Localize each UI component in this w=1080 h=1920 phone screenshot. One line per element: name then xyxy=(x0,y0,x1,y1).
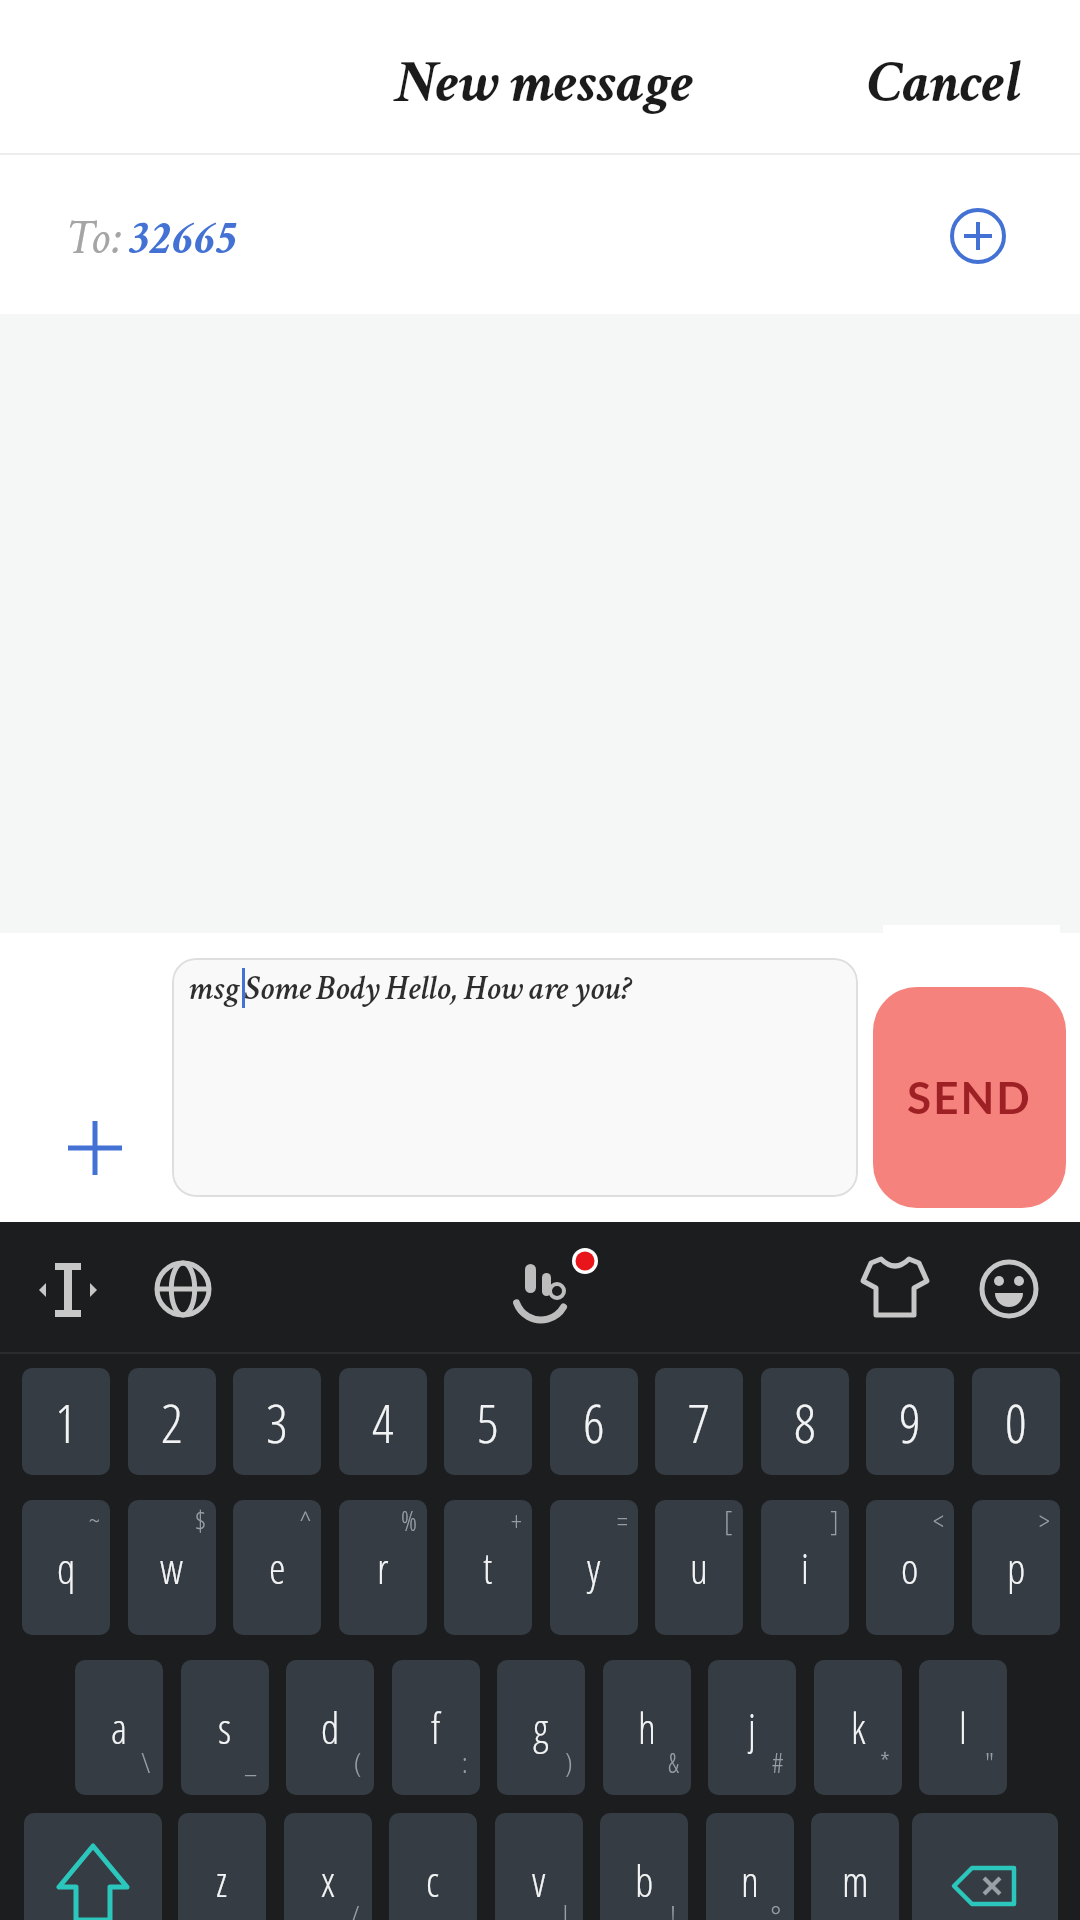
button[interactable]: 5 xyxy=(444,1368,532,1475)
staticText: z xyxy=(216,1852,228,1909)
staticText: 5 xyxy=(477,1385,499,1459)
staticText: k xyxy=(851,1699,866,1756)
staticText: 9 xyxy=(899,1385,921,1459)
staticText: ^ xyxy=(300,1502,311,1539)
staticText: 4 xyxy=(372,1385,394,1459)
button[interactable]: 7 xyxy=(655,1368,743,1475)
button[interactable]: msg Some Body Hello, How are you? xyxy=(172,958,858,1197)
staticText: v xyxy=(532,1852,546,1909)
button[interactable]: p xyxy=(972,1500,1060,1635)
staticText: " xyxy=(985,1744,995,1781)
button[interactable]: Cancel xyxy=(868,44,1022,122)
staticText: | xyxy=(560,1897,571,1920)
staticText: y xyxy=(587,1539,601,1596)
button[interactable]: u xyxy=(655,1500,743,1635)
staticText: e xyxy=(269,1539,286,1596)
button[interactable]: 8 xyxy=(761,1368,849,1475)
button[interactable]: c xyxy=(389,1813,477,1920)
button[interactable]: h xyxy=(603,1660,691,1795)
button[interactable]: j xyxy=(708,1660,796,1795)
button[interactable] xyxy=(24,1813,162,1920)
staticText: 3 xyxy=(266,1385,288,1459)
staticText: msg Some Body Hello, How are you? xyxy=(188,966,633,1011)
button[interactable]: z xyxy=(178,1813,266,1920)
staticText: To: xyxy=(66,207,122,269)
button[interactable]: 1 xyxy=(22,1368,110,1475)
staticText: r xyxy=(377,1539,389,1596)
button[interactable]: d xyxy=(286,1660,374,1795)
staticText: ) xyxy=(565,1744,573,1781)
staticText: \ xyxy=(141,1744,151,1781)
button[interactable]: 3 xyxy=(233,1368,321,1475)
staticText: s xyxy=(218,1699,232,1756)
button[interactable]: o xyxy=(866,1500,954,1635)
button[interactable]: x xyxy=(284,1813,372,1920)
button[interactable] xyxy=(145,1251,221,1327)
button[interactable] xyxy=(62,1115,128,1181)
staticText: m xyxy=(842,1852,869,1909)
staticText: 1 xyxy=(55,1385,77,1459)
button[interactable] xyxy=(0,155,1080,313)
button[interactable]: f xyxy=(392,1660,480,1795)
button[interactable]: s xyxy=(181,1660,269,1795)
staticText: 6 xyxy=(583,1385,605,1459)
button[interactable] xyxy=(948,206,1008,266)
staticText: c xyxy=(426,1852,440,1909)
staticText: SEND xyxy=(907,1071,1032,1124)
button[interactable]: q xyxy=(22,1500,110,1635)
button[interactable]: 2 xyxy=(128,1368,216,1475)
staticText: o xyxy=(901,1539,919,1596)
staticText: u xyxy=(690,1539,708,1596)
button[interactable]: v xyxy=(495,1813,583,1920)
button[interactable]: SEND xyxy=(873,987,1066,1208)
staticText: $ xyxy=(195,1502,206,1539)
staticText: # xyxy=(772,1744,784,1781)
staticText: x xyxy=(321,1852,335,1909)
button[interactable]: e xyxy=(233,1500,321,1635)
staticText: p xyxy=(1007,1539,1026,1596)
staticText: i xyxy=(801,1539,809,1596)
staticText: d xyxy=(321,1699,340,1756)
staticText: * xyxy=(880,1744,890,1781)
staticText: ° xyxy=(770,1897,782,1920)
staticText: % xyxy=(401,1502,417,1539)
button[interactable] xyxy=(490,1240,610,1340)
staticText: [ xyxy=(724,1502,733,1539)
button[interactable]: 6 xyxy=(550,1368,638,1475)
button[interactable] xyxy=(971,1251,1047,1327)
button[interactable]: 4 xyxy=(339,1368,427,1475)
staticText: ( xyxy=(354,1744,362,1781)
button[interactable]: i xyxy=(761,1500,849,1635)
button[interactable]: t xyxy=(444,1500,532,1635)
staticText: ] xyxy=(830,1502,839,1539)
button[interactable] xyxy=(857,1249,933,1325)
button[interactable]: a xyxy=(75,1660,163,1795)
button[interactable]: 9 xyxy=(866,1368,954,1475)
staticText: : xyxy=(462,1744,468,1781)
staticText: & xyxy=(668,1744,679,1781)
staticText: > xyxy=(1039,1502,1050,1539)
button[interactable]: k xyxy=(814,1660,902,1795)
button[interactable]: b xyxy=(600,1813,688,1920)
staticText: 32665 xyxy=(131,207,237,269)
staticText: a xyxy=(111,1699,128,1756)
button[interactable]: l xyxy=(919,1660,1007,1795)
button[interactable]: n xyxy=(706,1813,794,1920)
button[interactable] xyxy=(912,1813,1058,1920)
staticText: q xyxy=(57,1539,76,1596)
button[interactable]: w xyxy=(128,1500,216,1635)
staticText: + xyxy=(511,1502,522,1539)
staticText: w xyxy=(160,1539,184,1596)
button[interactable]: r xyxy=(339,1500,427,1635)
staticText: n xyxy=(741,1852,759,1909)
staticText: 7 xyxy=(688,1385,710,1459)
button[interactable]: g xyxy=(497,1660,585,1795)
button[interactable]: y xyxy=(550,1500,638,1635)
button[interactable]: m xyxy=(811,1813,899,1920)
staticText: 2 xyxy=(161,1385,183,1459)
staticText: t xyxy=(483,1539,493,1596)
staticText: j xyxy=(748,1699,756,1756)
staticText: h xyxy=(638,1699,656,1756)
button[interactable] xyxy=(30,1252,106,1328)
button[interactable]: 0 xyxy=(972,1368,1060,1475)
